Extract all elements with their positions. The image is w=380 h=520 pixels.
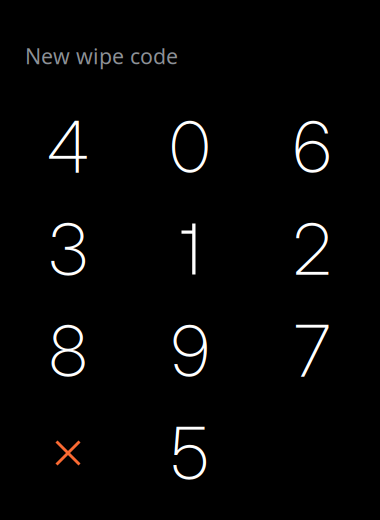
button[interactable]: 0: [129, 96, 251, 198]
staticText: 3: [48, 206, 87, 292]
staticText: 0: [169, 104, 210, 190]
button[interactable]: Delete: [7, 402, 129, 504]
staticText: 8: [49, 308, 87, 394]
button[interactable]: 1: [129, 198, 251, 300]
staticText: 7: [294, 308, 330, 394]
staticText: 2: [293, 206, 331, 292]
button[interactable]: 8: [7, 300, 129, 402]
button[interactable]: 9: [129, 300, 251, 402]
button[interactable]: 4: [7, 96, 129, 198]
staticText: 6: [293, 104, 331, 190]
button[interactable]: 3: [7, 198, 129, 300]
staticText: 5: [171, 410, 209, 496]
button[interactable]: 2: [251, 198, 373, 300]
button[interactable]: 7: [251, 300, 373, 402]
button[interactable]: 6: [251, 96, 373, 198]
staticText: 4: [47, 104, 89, 190]
staticText: 9: [171, 308, 209, 394]
button[interactable]: 5: [129, 402, 251, 504]
staticText: New wipe code: [25, 42, 178, 70]
